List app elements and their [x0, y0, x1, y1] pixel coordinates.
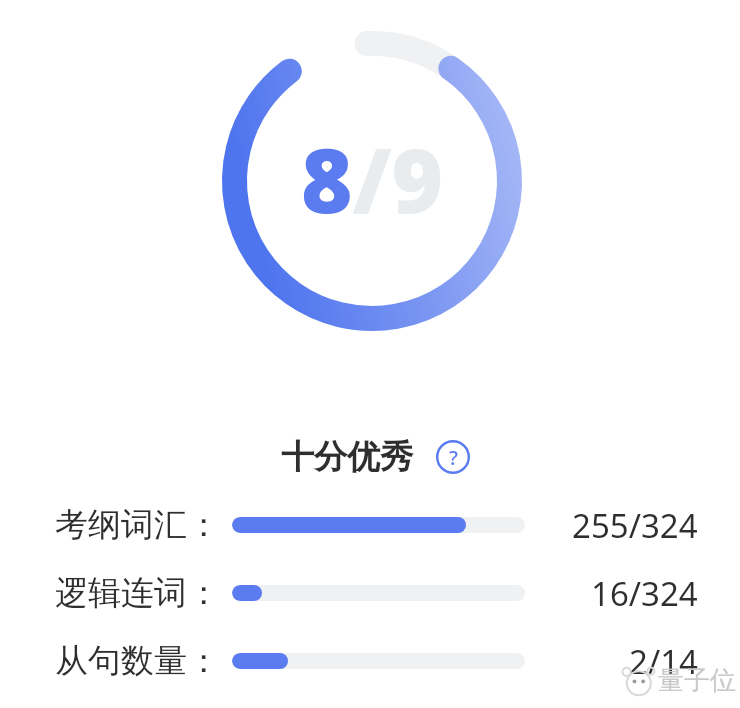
- staticText: 从句数量：: [55, 640, 220, 682]
- button[interactable]: 逻辑连词：: [0, 571, 740, 615]
- staticText: 2/14: [629, 639, 698, 683]
- staticText: 逻辑连词：: [55, 572, 220, 614]
- button[interactable]: 考纲词汇：: [0, 503, 740, 547]
- staticText: ?: [449, 444, 458, 471]
- button[interactable]: Help: [435, 439, 471, 475]
- button[interactable]: 从句数量：: [0, 639, 740, 683]
- staticText: 考纲词汇：: [55, 504, 220, 546]
- staticText: 量子位: [658, 664, 736, 697]
- staticText: 十分优秀: [281, 436, 413, 478]
- staticText: 8/9: [301, 119, 444, 239]
- staticText: 255/324: [572, 503, 698, 547]
- staticText: 16/324: [591, 571, 698, 615]
